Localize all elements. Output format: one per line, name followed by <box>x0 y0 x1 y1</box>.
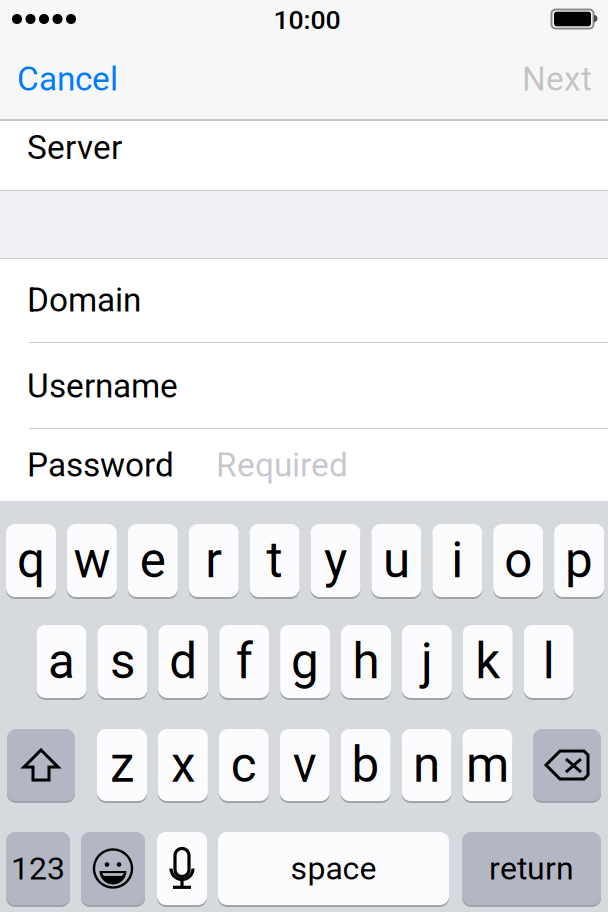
button[interactable]: y <box>310 522 360 599</box>
button[interactable]: j <box>402 623 452 700</box>
button[interactable]: Dictation <box>157 830 207 907</box>
button[interactable]: Shift <box>7 727 75 803</box>
button[interactable]: 123 <box>6 830 70 907</box>
staticText: i <box>451 532 463 589</box>
button[interactable] <box>533 727 601 803</box>
button[interactable]: Emoji <box>81 830 145 907</box>
staticText: b <box>352 736 380 794</box>
staticText: Server <box>27 128 122 167</box>
staticText: Username <box>27 366 178 406</box>
staticText: g <box>291 633 319 690</box>
staticText: Next <box>522 59 592 99</box>
staticText: d <box>169 633 197 690</box>
staticText: e <box>140 532 166 589</box>
staticText: s <box>110 633 135 690</box>
staticText: y <box>324 532 347 589</box>
button[interactable]: Domain <box>0 259 608 343</box>
button[interactable]: d <box>158 623 208 700</box>
staticText: return <box>489 850 574 887</box>
button[interactable] <box>157 830 207 907</box>
button[interactable]: Cancel <box>0 38 150 119</box>
staticText: l <box>543 633 555 690</box>
button[interactable]: w <box>67 522 117 599</box>
staticText: q <box>17 532 45 589</box>
button[interactable]: b <box>341 727 391 803</box>
staticText: w <box>73 532 110 589</box>
button[interactable]: h <box>341 623 391 700</box>
staticText: t <box>267 532 283 589</box>
button[interactable]: f <box>219 623 269 700</box>
staticText: h <box>352 633 379 690</box>
staticText: Required <box>216 445 348 485</box>
button[interactable]: t <box>250 522 300 599</box>
staticText: k <box>475 633 500 690</box>
staticText: Password <box>27 445 174 485</box>
button[interactable] <box>7 727 75 803</box>
staticText: a <box>48 633 75 690</box>
button[interactable]: r <box>189 522 239 599</box>
staticText: Cancel <box>17 59 118 99</box>
button[interactable]: k <box>463 623 513 700</box>
button[interactable]: Next <box>478 38 608 119</box>
button[interactable]: q <box>6 522 56 599</box>
staticText: u <box>383 532 410 589</box>
button[interactable]: return <box>462 830 601 907</box>
staticText: x <box>171 736 195 794</box>
staticText: n <box>413 736 440 794</box>
staticText: v <box>293 736 317 794</box>
button[interactable]: n <box>401 727 451 803</box>
staticText: p <box>565 532 593 589</box>
staticText: 123 <box>11 850 65 887</box>
button[interactable] <box>81 830 145 907</box>
staticText: r <box>205 532 222 589</box>
staticText: f <box>236 633 253 690</box>
button[interactable]: Delete <box>533 727 601 803</box>
button[interactable]: s <box>97 623 147 700</box>
button[interactable]: e <box>128 522 178 599</box>
button[interactable]: z <box>97 727 147 803</box>
button[interactable]: i <box>432 522 482 599</box>
staticText: o <box>504 532 532 589</box>
button[interactable]: l <box>524 623 574 700</box>
button[interactable]: u <box>371 522 421 599</box>
staticText: 10:00 <box>273 4 340 36</box>
button[interactable]: Password <box>0 429 608 501</box>
button[interactable]: p <box>554 522 604 599</box>
staticText: Domain <box>27 280 141 320</box>
staticText: m <box>466 736 509 794</box>
staticText: space <box>290 850 376 887</box>
button[interactable]: a <box>36 623 86 700</box>
button[interactable]: m <box>462 727 512 803</box>
button[interactable]: x <box>158 727 208 803</box>
button[interactable]: space <box>218 830 449 907</box>
staticText: c <box>231 736 257 794</box>
button[interactable]: g <box>280 623 330 700</box>
staticText: z <box>110 736 134 794</box>
button[interactable]: o <box>493 522 543 599</box>
button[interactable]: v <box>280 727 330 803</box>
button[interactable]: Username <box>0 343 608 429</box>
staticText: j <box>421 633 433 690</box>
button[interactable]: c <box>219 727 269 803</box>
button[interactable]: Server <box>0 121 608 191</box>
